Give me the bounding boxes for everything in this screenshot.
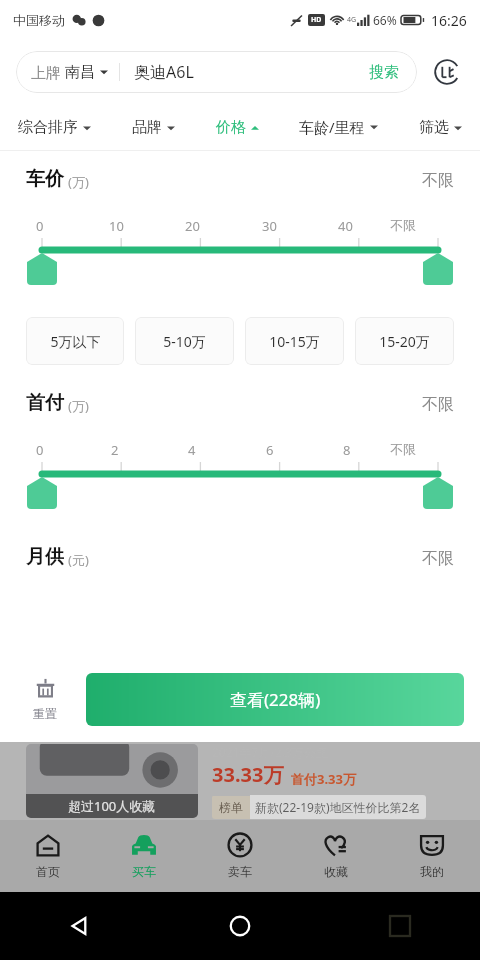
staticText: 综合排序 bbox=[18, 118, 78, 137]
button[interactable]: 收藏 bbox=[288, 827, 384, 885]
button[interactable]: 0 bbox=[0, 441, 480, 511]
staticText: 不限 bbox=[390, 441, 416, 457]
staticText: 车价 bbox=[26, 167, 64, 191]
staticText: 收藏 bbox=[324, 864, 348, 879]
button[interactable]: 返回 bbox=[65, 911, 95, 941]
button[interactable]: 5万以下 bbox=[26, 317, 124, 365]
staticText: 查看(228辆) bbox=[230, 688, 321, 711]
staticText: 新款(22-19款)地区性价比第2名 bbox=[255, 799, 421, 815]
button[interactable]: 我的 bbox=[384, 827, 480, 885]
staticText: 卖车 bbox=[228, 864, 252, 879]
staticText: 15-20万 bbox=[379, 332, 430, 351]
staticText: 4 bbox=[188, 441, 196, 459]
button[interactable]: 0 bbox=[0, 217, 480, 287]
staticText: 20 bbox=[185, 217, 200, 235]
staticText: 首付 bbox=[26, 391, 64, 415]
staticText: 上牌 bbox=[31, 62, 65, 82]
staticText: 5万以下 bbox=[50, 332, 101, 351]
button[interactable]: 主页 bbox=[225, 911, 255, 941]
staticText: 30 bbox=[262, 217, 277, 235]
button[interactable]: 5-10万 bbox=[135, 317, 234, 365]
button[interactable]: 价格 bbox=[215, 111, 260, 144]
staticText: 奥迪A6L bbox=[134, 61, 194, 83]
staticText: 筛选 bbox=[419, 118, 449, 137]
staticText: 40 bbox=[338, 217, 353, 235]
button[interactable]: 首页 bbox=[0, 827, 96, 885]
staticText: 月供 bbox=[26, 545, 64, 569]
staticText: 车龄/里程 bbox=[299, 117, 365, 137]
staticText: 搜索 bbox=[369, 63, 399, 82]
staticText: 不限 bbox=[390, 217, 416, 233]
button[interactable]: 上牌 bbox=[16, 51, 417, 93]
staticText: 榜单 bbox=[219, 800, 243, 815]
button[interactable]: 卖车 bbox=[192, 827, 288, 885]
staticText: 重置 bbox=[33, 706, 57, 721]
staticText: 66% bbox=[373, 12, 397, 28]
staticText: 2 bbox=[111, 441, 119, 459]
staticText: 0 bbox=[36, 217, 44, 235]
staticText: 品牌 bbox=[132, 118, 162, 137]
button[interactable]: 重置 bbox=[16, 678, 74, 721]
staticText: 买车 bbox=[132, 864, 156, 879]
staticText: 16:26 bbox=[431, 11, 467, 30]
staticText: (万) bbox=[68, 397, 89, 415]
staticText: (万) bbox=[68, 173, 89, 191]
button[interactable]: 筛选 bbox=[418, 111, 463, 144]
staticText: (元) bbox=[68, 551, 89, 569]
button[interactable]: 买车 bbox=[96, 827, 192, 885]
staticText: 价格 bbox=[216, 118, 246, 137]
staticText: HD bbox=[311, 15, 322, 25]
staticText: 33.33万 bbox=[212, 761, 284, 788]
staticText: 不限 bbox=[422, 395, 454, 415]
button[interactable]: 10-15万 bbox=[245, 317, 344, 365]
button[interactable]: 品牌 bbox=[131, 111, 176, 144]
staticText: 5-10万 bbox=[163, 332, 206, 351]
staticText: 超过100人收藏 bbox=[68, 797, 156, 815]
button[interactable]: 最近任务 bbox=[385, 911, 415, 941]
button[interactable]: 车龄/里程 bbox=[298, 110, 379, 144]
staticText: 10-15万 bbox=[269, 332, 320, 351]
staticText: 8 bbox=[343, 441, 351, 459]
staticText: 南昌 bbox=[65, 63, 95, 82]
button[interactable]: 查看(228辆) bbox=[86, 673, 464, 726]
button[interactable]: 15-20万 bbox=[355, 317, 454, 365]
staticText: 6 bbox=[266, 441, 274, 459]
staticText: 不限 bbox=[422, 171, 454, 191]
staticText: 不限 bbox=[422, 549, 454, 569]
button[interactable]: 综合排序 bbox=[17, 111, 92, 144]
staticText: 中国移动 bbox=[13, 12, 65, 28]
staticText: 首页 bbox=[36, 864, 60, 879]
staticText: 10 bbox=[109, 217, 124, 235]
staticText: 0 bbox=[36, 441, 44, 459]
button[interactable]: 对比车辆 bbox=[430, 55, 464, 89]
staticText: 4G bbox=[347, 15, 357, 25]
staticText: 首付3.33万 bbox=[291, 770, 356, 788]
staticText: 我的 bbox=[420, 864, 444, 879]
